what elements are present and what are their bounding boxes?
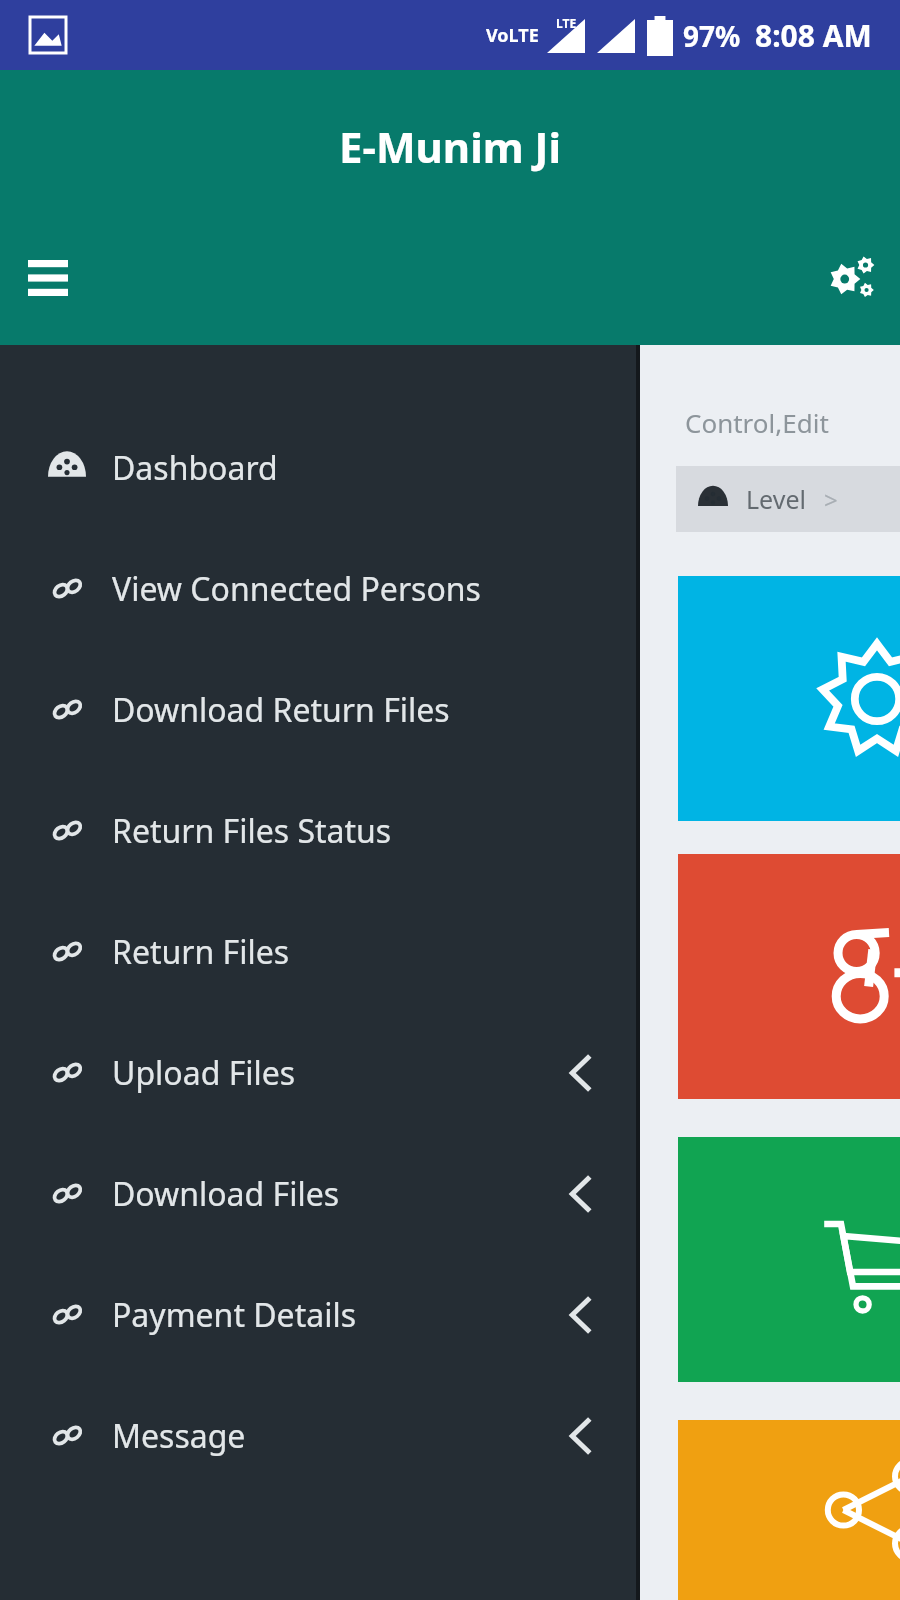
staticText: Return Files Status [112, 809, 392, 853]
button[interactable]: Dashboard tile [678, 854, 900, 1099]
staticText: Return Files [112, 930, 290, 974]
staticText: Message [112, 1414, 246, 1458]
staticText: Download Files [112, 1172, 340, 1216]
staticText: 97% [683, 17, 741, 55]
staticText: LTE [556, 15, 577, 31]
button[interactable]: Return Files [0, 891, 636, 1012]
button[interactable]: Download Files [0, 1133, 636, 1254]
staticText: Dashboard [112, 446, 278, 490]
staticText: 8:08 AM [755, 15, 872, 56]
button[interactable]: Message [0, 1375, 636, 1496]
staticText: Level [746, 482, 806, 516]
button[interactable]: Dashboard tile [678, 1137, 900, 1382]
button[interactable]: Dashboard tile [678, 1420, 900, 1600]
button[interactable]: Upload Files [0, 1012, 636, 1133]
staticText: Payment Details [112, 1293, 357, 1337]
button[interactable]: View Connected Persons [0, 528, 636, 649]
staticText: > [824, 483, 838, 516]
button[interactable]: Return Files Status [0, 770, 636, 891]
button[interactable]: Settings [804, 230, 900, 326]
button[interactable]: Level [676, 466, 900, 532]
button[interactable]: Payment Details [0, 1254, 636, 1375]
staticText: Download Return Files [112, 688, 450, 732]
staticText: Control,Edit [685, 405, 829, 440]
staticText: E-Munim Ji [339, 118, 562, 175]
staticText: Upload Files [112, 1051, 296, 1095]
button[interactable]: Dashboard tile [678, 576, 900, 821]
button[interactable]: Dashboard [0, 407, 636, 528]
button[interactable]: Download Return Files [0, 649, 636, 770]
staticText: VoLTE [486, 23, 539, 48]
staticText: View Connected Persons [112, 567, 481, 611]
button[interactable]: Open navigation menu [0, 230, 96, 326]
